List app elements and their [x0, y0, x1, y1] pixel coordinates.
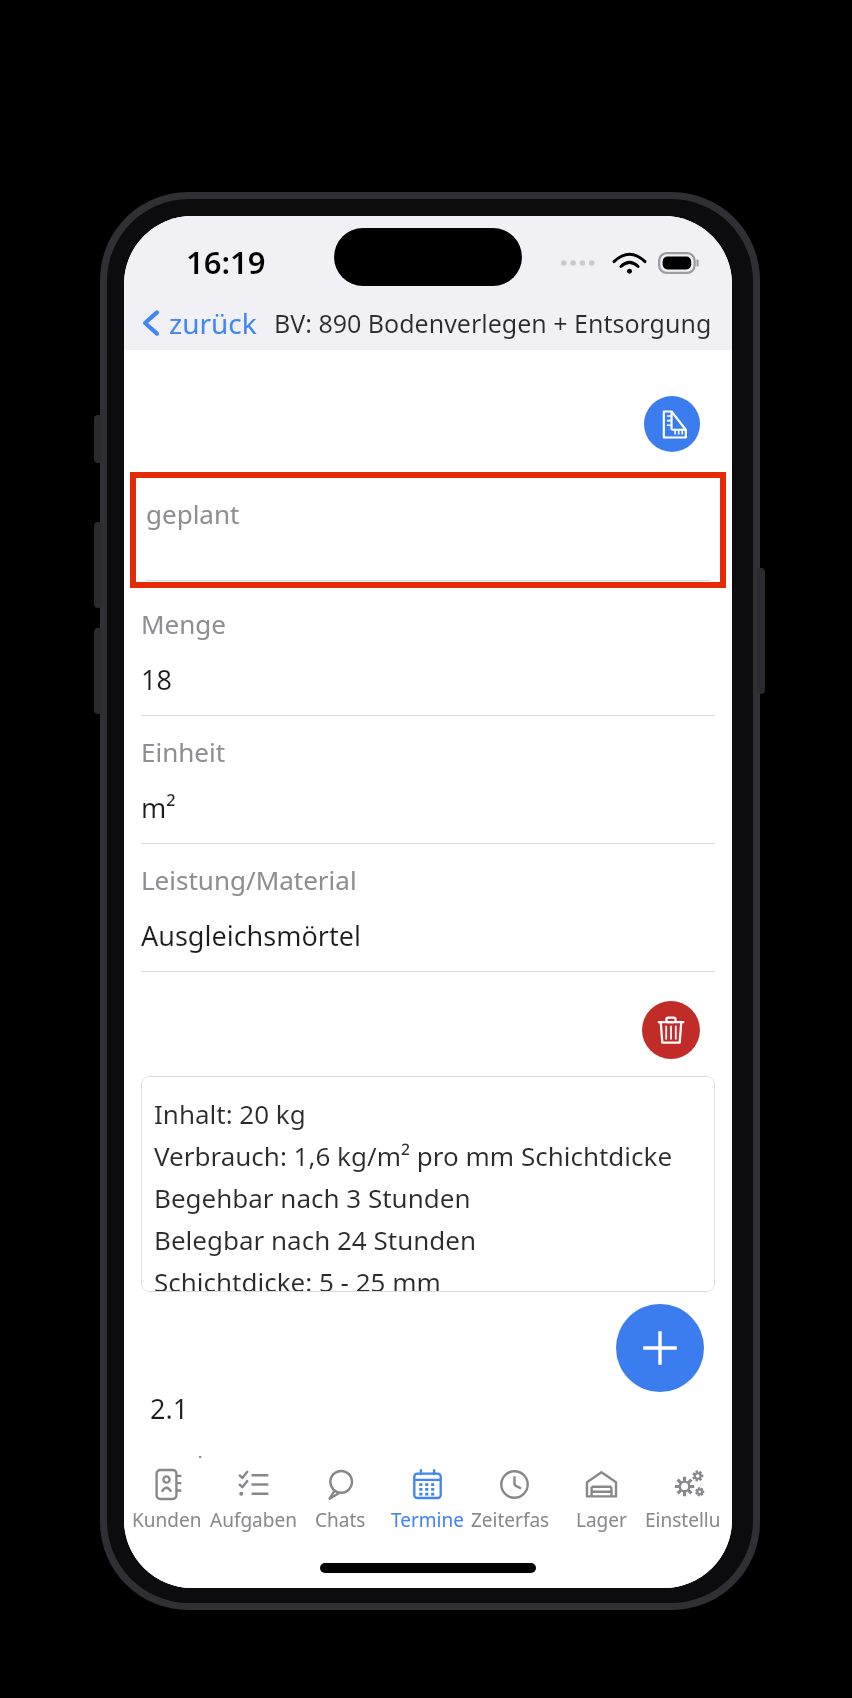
staticText: BV: 890 Bodenverlegen + Entsorgung — [274, 306, 712, 340]
staticText: 18 — [141, 661, 172, 698]
staticText: Menge — [141, 606, 226, 641]
button[interactable]: Einstellung. — [645, 1466, 732, 1544]
button[interactable]: Chats — [297, 1466, 384, 1544]
staticText: 2.1 — [150, 1390, 189, 1427]
staticText: Belegbar nach 24 Stunden — [154, 1222, 476, 1257]
staticText: Begehbar nach 3 Stunden — [154, 1180, 471, 1215]
button[interactable]: Hinzufügen — [616, 1304, 704, 1392]
staticText: zurück — [169, 304, 257, 342]
button[interactable]: Maße erfassen — [644, 396, 700, 452]
staticText: geplant — [150, 1447, 244, 1458]
staticText: Ausgleichsmörtel — [141, 917, 361, 954]
button[interactable]: Löschen — [642, 1001, 700, 1059]
staticText: geplant — [146, 496, 240, 531]
staticText: Leistung/Material — [141, 862, 357, 897]
staticText: Termine — [391, 1507, 464, 1533]
staticText: m² — [141, 789, 176, 826]
staticText: Einstellung. — [645, 1507, 732, 1533]
staticText: Inhalt: 20 kg — [154, 1096, 306, 1131]
staticText: Lager — [576, 1507, 627, 1533]
staticText: 16:19 — [186, 241, 266, 283]
staticText: Schichtdicke: 5 - 25 mm — [154, 1264, 441, 1292]
button[interactable]: Termine — [384, 1466, 471, 1544]
button[interactable]: Lager — [558, 1466, 645, 1544]
staticText: Aufgaben — [210, 1507, 297, 1533]
staticText: Zeiterfass... — [471, 1507, 558, 1533]
button[interactable]: Aufgaben — [210, 1466, 297, 1544]
button[interactable]: Kunden — [124, 1466, 210, 1544]
button[interactable]: Maße erfassen — [644, 1317, 700, 1373]
staticText: Einheit — [141, 734, 226, 769]
button[interactable]: geplant — [130, 472, 726, 588]
button[interactable]: zurück — [136, 299, 262, 347]
staticText: Chats — [315, 1507, 366, 1533]
button[interactable]: Zeiterfass... — [471, 1466, 558, 1544]
staticText: Kunden — [132, 1507, 202, 1533]
staticText: Verbrauch: 1,6 kg/m² pro mm Schichtdicke — [154, 1138, 673, 1173]
